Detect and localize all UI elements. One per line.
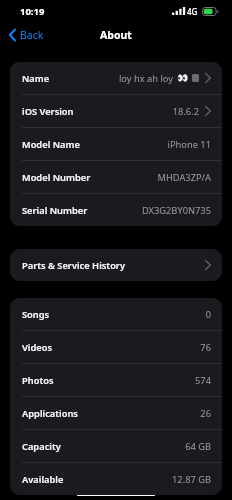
button[interactable]: Model Name xyxy=(10,128,222,160)
staticText: iOS Version xyxy=(22,105,74,118)
staticText: Photos xyxy=(22,374,54,387)
button[interactable]: Capacity xyxy=(10,430,222,462)
button[interactable]: Parts & Service History xyxy=(10,249,222,281)
button[interactable]: Name xyxy=(10,62,222,94)
staticText: Available xyxy=(22,473,64,486)
button[interactable]: Applications xyxy=(10,397,222,429)
button[interactable]: Songs xyxy=(10,298,222,330)
other: Battery xyxy=(202,7,219,16)
staticText: 18.6.2 xyxy=(172,105,199,118)
staticText: MHDA3ZP/A xyxy=(157,171,211,184)
staticText: 👀 xyxy=(177,73,189,84)
button[interactable]: Back xyxy=(5,24,48,46)
staticText: loy hx ah loy xyxy=(118,72,173,85)
button[interactable]: iOS Version xyxy=(10,95,222,127)
staticText: 12.87 GB xyxy=(172,473,211,486)
staticText: 574 xyxy=(195,374,211,387)
button[interactable]: Model Number xyxy=(10,161,222,193)
staticText: Songs xyxy=(22,308,50,321)
button[interactable]: Serial Number xyxy=(10,194,222,226)
staticText: Name xyxy=(22,72,50,85)
button[interactable]: Available xyxy=(10,463,222,495)
staticText: DX3G2BY0N735 xyxy=(141,204,211,217)
staticText: Back xyxy=(20,28,44,42)
staticText: 26 xyxy=(200,407,211,420)
staticText: Applications xyxy=(22,407,78,420)
staticText: 0 xyxy=(205,308,211,321)
staticText: Model Number xyxy=(22,171,91,184)
staticText: Capacity xyxy=(22,440,61,453)
staticText: Videos xyxy=(22,341,53,354)
staticText: 76 xyxy=(200,341,211,354)
staticText: 10:19 xyxy=(20,5,45,18)
staticText: Serial Number xyxy=(22,204,88,217)
staticText: iPhone 11 xyxy=(167,138,211,151)
staticText: 4G xyxy=(187,6,198,17)
staticText: About xyxy=(100,28,132,42)
button[interactable]: Videos xyxy=(10,331,222,363)
other: Cellular signal xyxy=(172,7,183,15)
staticText: Parts & Service History xyxy=(22,259,126,272)
staticText: 64 GB xyxy=(185,440,211,453)
button[interactable]: Photos xyxy=(10,364,222,396)
staticText: Model Name xyxy=(22,138,80,151)
